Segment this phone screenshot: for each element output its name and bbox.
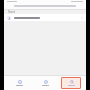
staticText: Name — [8, 10, 16, 14]
button[interactable]: Info — [35, 77, 55, 89]
button[interactable]: Search — [61, 77, 81, 89]
button[interactable] — [4, 3, 86, 9]
button[interactable]: Media — [9, 77, 29, 89]
button[interactable] — [4, 14, 86, 21]
